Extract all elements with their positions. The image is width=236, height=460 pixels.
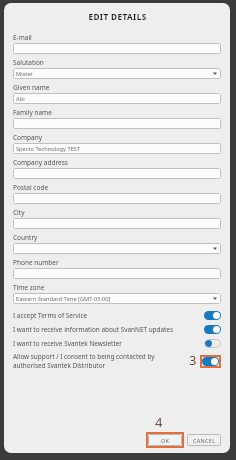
staticText: EDIT DETAILS [88,11,147,22]
staticText: Given name [13,83,50,92]
button[interactable]: Disabled toggle [204,339,221,348]
staticText: Family name [13,108,52,117]
staticText: Time zone [13,283,45,292]
staticText: I want to receive Svantek Newsletter [13,339,200,348]
staticText: Salutation [13,58,44,67]
button[interactable]: CANCEL [187,434,221,446]
staticText: Mister [16,70,33,78]
staticText: 4 [155,413,163,431]
button[interactable]: I want to receive Svantek Newsletter [13,339,221,348]
button[interactable] [13,243,221,254]
staticText: 3 [189,351,197,369]
staticText: Allow support / I consent to being conta… [13,352,187,370]
button[interactable]: Mister [13,68,221,79]
button[interactable] [13,118,221,129]
staticText: Abi [16,95,25,103]
staticText: OK [161,437,170,444]
staticText: E-mail [13,33,32,42]
staticText: Country [13,233,38,242]
staticText: I want to receive information about Svan… [13,325,200,334]
staticText: Specto Technology TEST [16,145,81,153]
staticText: City [13,208,25,217]
staticText: Company [13,133,43,142]
button[interactable]: Enabled toggle [204,325,221,334]
button[interactable]: Enabled toggle [204,311,221,320]
button[interactable]: Specto Technology TEST [13,143,221,154]
button[interactable]: I want to receive information about Svan… [13,325,221,334]
button[interactable] [13,168,221,179]
staticText: Phone number [13,258,59,267]
button[interactable] [13,193,221,204]
staticText: I accept Terms of Service [13,311,200,320]
button[interactable]: Allow support toggle [202,357,219,366]
button[interactable]: I accept Terms of Service [13,311,221,320]
button[interactable] [13,43,221,54]
staticText: CANCEL [193,437,216,444]
button[interactable]: Enabled toggle [202,357,219,366]
button[interactable] [13,268,221,279]
staticText: Company address [13,158,68,167]
button[interactable]: Abi [13,93,221,104]
button[interactable]: OK [148,434,182,446]
staticText: Eastern Standard Time [GMT-05:00] [16,295,111,303]
staticText: Postal code [13,183,49,192]
button[interactable]: Eastern Standard Time [GMT-05:00] [13,293,221,304]
button[interactable] [13,218,221,229]
